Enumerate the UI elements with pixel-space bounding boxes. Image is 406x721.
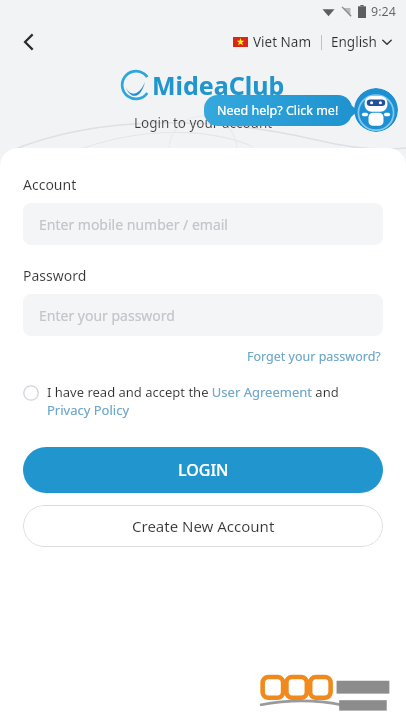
button[interactable]: Need help? Click me!: [204, 95, 352, 126]
staticText: MideaClub: [152, 68, 285, 102]
staticText: Login to your account: [134, 114, 273, 132]
other: Accept terms checkbox: [23, 385, 39, 401]
staticText: Enter mobile number / email: [39, 215, 228, 234]
button[interactable]: Forget your password?: [245, 346, 383, 367]
staticText: Need help? Click me!: [217, 102, 339, 119]
staticText: Viet Nam: [253, 33, 312, 51]
staticText: Enter your password: [39, 306, 175, 325]
staticText: LOGIN: [178, 459, 229, 481]
staticText: I have read and accept the User Agreemen…: [47, 383, 383, 419]
staticText: 9:24: [371, 3, 396, 20]
button[interactable]: Back: [12, 25, 46, 59]
button[interactable]: Viet Nam: [231, 29, 314, 55]
button[interactable]: Enter mobile number / email: [23, 203, 383, 245]
button[interactable]: Accept terms checkbox: [23, 383, 383, 419]
staticText: Create New Account: [132, 516, 275, 536]
staticText: English: [331, 33, 377, 51]
staticText: Forget your password?: [247, 348, 381, 365]
button[interactable]: English: [329, 29, 394, 55]
button[interactable]: Create New Account: [23, 505, 383, 547]
button[interactable]: Customer service chat: [354, 88, 398, 132]
button[interactable]: Enter your password: [23, 294, 383, 336]
button[interactable]: LOGIN: [23, 447, 383, 493]
staticText: Password: [23, 266, 87, 285]
staticText: Account: [23, 175, 77, 194]
